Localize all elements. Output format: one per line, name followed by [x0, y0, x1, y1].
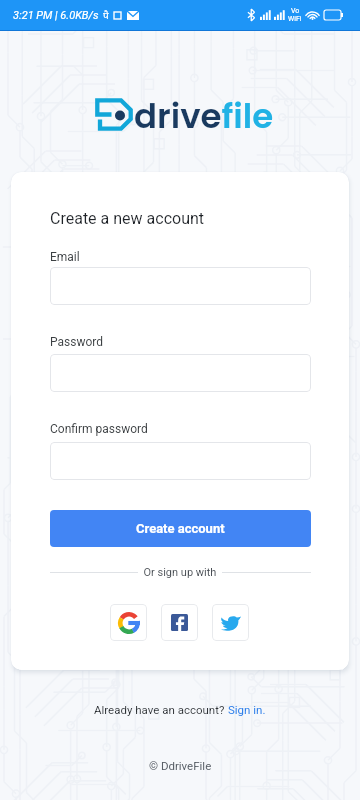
button[interactable]	[50, 354, 311, 392]
staticText: Confirm password	[50, 422, 148, 436]
staticText: Already have an account?	[94, 703, 228, 716]
button[interactable]: Create account	[50, 510, 311, 547]
staticText: Sign in.	[228, 703, 266, 716]
staticText: Or sign up with	[138, 566, 222, 579]
staticText: पै	[103, 8, 109, 22]
staticText: 3:21 PM | 6.0KB/s	[13, 9, 99, 22]
staticText: Email	[50, 250, 80, 264]
button[interactable]: Sign up with Google	[110, 604, 147, 641]
staticText: Create account	[136, 521, 225, 536]
button[interactable]: Sign up with Twitter	[212, 604, 249, 641]
staticText: WiFi	[288, 15, 302, 23]
staticText: Vo	[291, 7, 300, 15]
staticText: Password	[50, 335, 104, 349]
button[interactable]	[50, 442, 311, 480]
staticText: drivefile	[134, 92, 274, 140]
staticText: © DdriveFile	[149, 759, 212, 772]
button[interactable]: Sign in.	[228, 703, 266, 716]
button[interactable]: Sign up with Facebook	[161, 604, 198, 641]
button[interactable]	[50, 267, 311, 305]
staticText: Create a new account	[50, 209, 205, 228]
